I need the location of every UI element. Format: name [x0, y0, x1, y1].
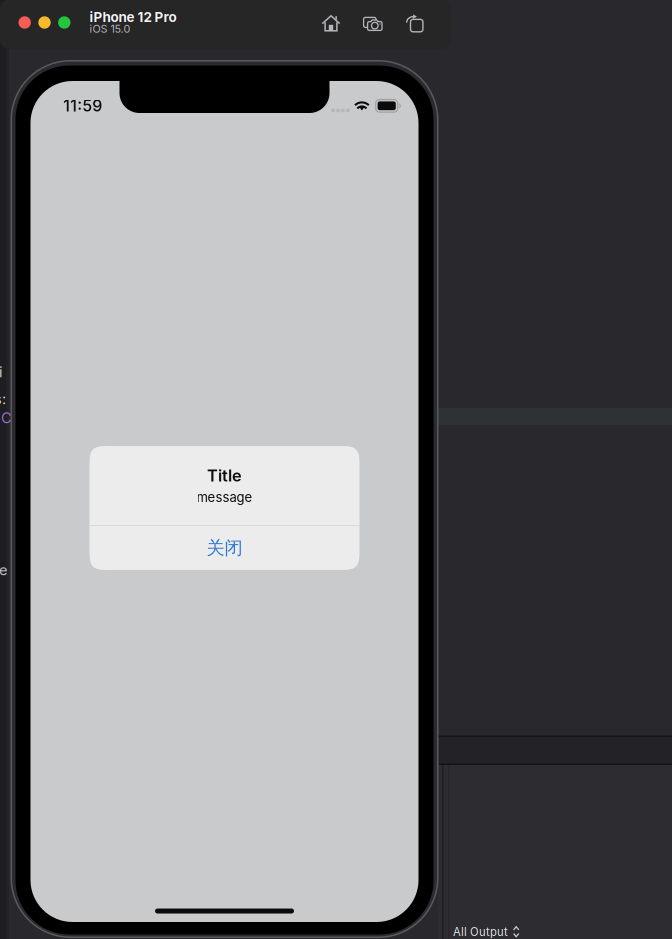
staticText: iOS 15.0	[89, 22, 130, 35]
staticText: Title	[207, 466, 242, 485]
staticText: iPhone 12 Pro	[89, 9, 176, 25]
staticText: message	[196, 489, 252, 505]
staticText: All Output	[453, 925, 508, 939]
button[interactable]: Home	[321, 14, 340, 33]
staticText: 关闭	[206, 537, 242, 559]
staticText: [i	[0, 363, 3, 381]
staticText: 11:59	[63, 96, 102, 115]
button[interactable]: 关闭	[89, 526, 359, 570]
staticText: ve	[0, 561, 8, 579]
button[interactable]: Screenshot	[363, 14, 383, 33]
staticText: s:	[0, 390, 6, 408]
button[interactable]: Rotate	[405, 14, 424, 33]
staticText: nC	[0, 409, 12, 427]
